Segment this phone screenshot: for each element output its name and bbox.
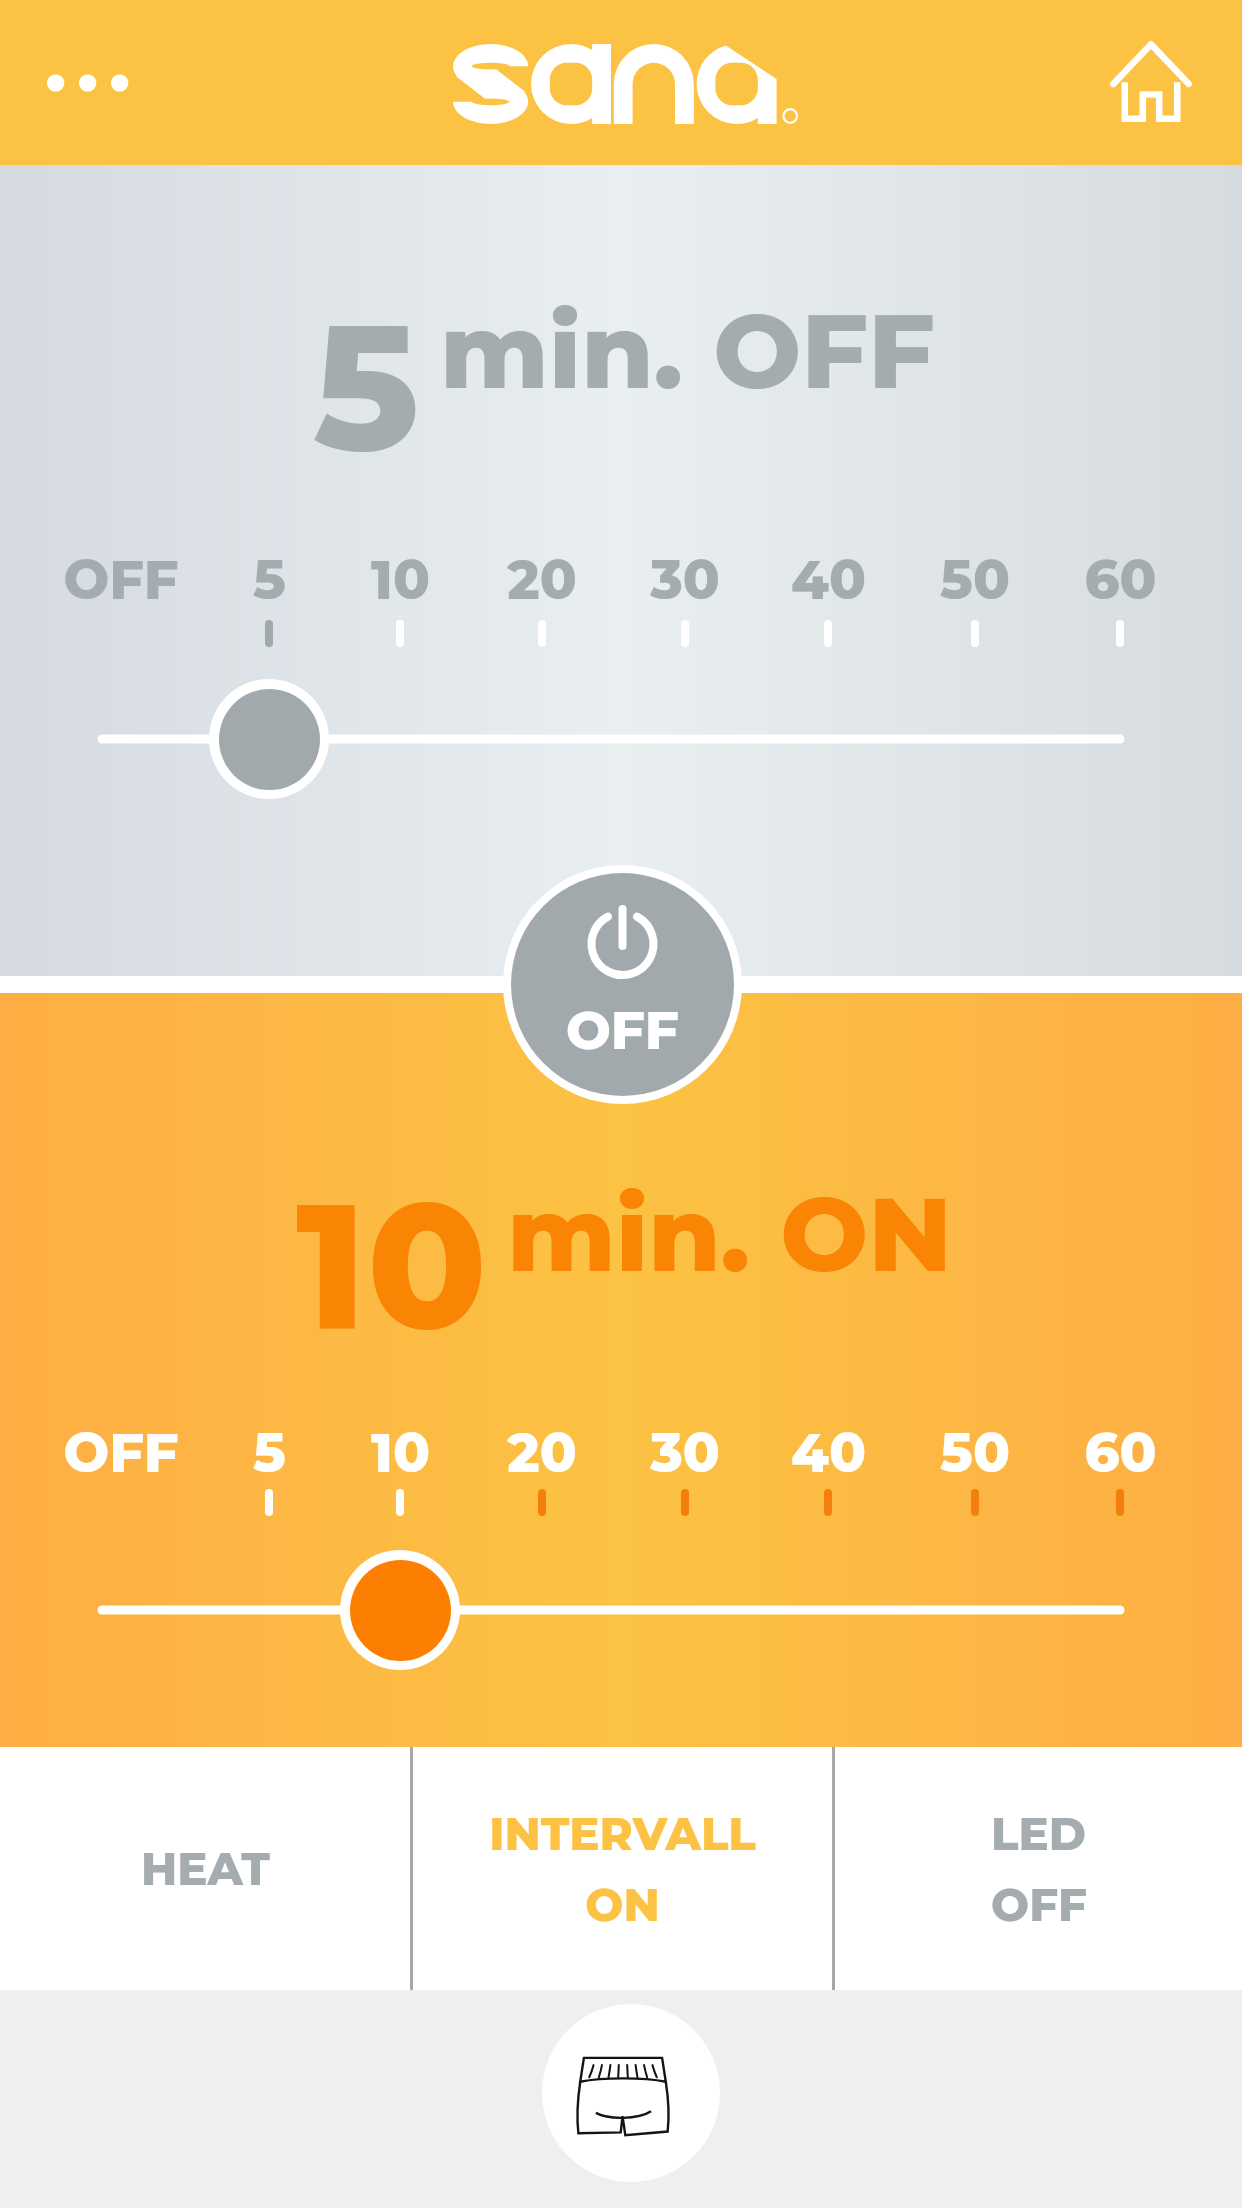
staticText: 30: [650, 1420, 720, 1486]
staticText: 60: [1084, 547, 1157, 613]
staticText: min. ON: [507, 1170, 953, 1297]
button[interactable]: Duration slider: [340, 1550, 460, 1670]
staticText: ON: [585, 1877, 660, 1932]
staticText: 20: [507, 1420, 577, 1486]
staticText: 5: [313, 281, 420, 494]
button[interactable]: HEAT: [0, 1747, 410, 1990]
staticText: 5: [253, 547, 286, 613]
staticText: 10: [371, 547, 430, 613]
staticText: 60: [1084, 1420, 1157, 1486]
staticText: HEAT: [141, 1841, 270, 1896]
staticText: 50: [940, 1420, 1010, 1486]
staticText: 20: [507, 547, 577, 613]
button[interactable]: Device: [542, 2004, 720, 2182]
staticText: LED: [991, 1806, 1086, 1861]
staticText: 30: [650, 547, 720, 613]
button[interactable]: Power: [503, 865, 742, 1104]
button[interactable]: More options: [28, 23, 148, 143]
staticText: OFF: [566, 998, 679, 1063]
staticText: 40: [791, 547, 866, 613]
other: sana: [453, 44, 793, 124]
staticText: 5: [253, 1420, 286, 1486]
staticText: min. OFF: [440, 287, 935, 414]
staticText: OFF: [63, 547, 179, 613]
staticText: OFF: [63, 1420, 179, 1486]
staticText: 40: [791, 1420, 866, 1486]
staticText: 10: [371, 1420, 430, 1486]
staticText: 10: [296, 1159, 487, 1372]
staticText: 50: [940, 547, 1010, 613]
button[interactable]: Home: [1095, 25, 1207, 137]
staticText: INTERVALL: [489, 1806, 756, 1861]
button[interactable]: LED: [835, 1747, 1242, 1990]
button[interactable]: Duration slider: [209, 679, 329, 799]
staticText: OFF: [991, 1877, 1087, 1932]
button[interactable]: INTERVALL: [413, 1747, 832, 1990]
